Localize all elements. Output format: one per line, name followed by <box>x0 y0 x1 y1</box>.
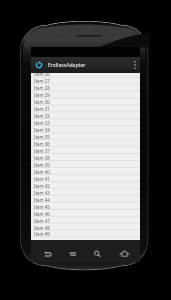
button[interactable]: Item 28 <box>31 84 140 91</box>
staticText: Item 39 <box>34 162 50 168</box>
staticText: Item 33 <box>34 120 50 126</box>
button[interactable]: Item 36 <box>31 140 140 147</box>
staticText: Item 48 <box>34 225 50 231</box>
button[interactable]: Item 39 <box>31 161 140 168</box>
button[interactable]: Item 46 <box>31 210 140 217</box>
staticText: Item 38 <box>34 155 50 161</box>
button[interactable]: Item 30 <box>31 98 140 105</box>
staticText: Item 30 <box>34 99 50 105</box>
staticText: Item 44 <box>34 197 50 203</box>
button[interactable]: More options <box>129 57 140 73</box>
staticText: Item 42 <box>34 183 50 189</box>
button[interactable]: Item 48 <box>31 224 140 231</box>
button[interactable]: Item 45 <box>31 203 140 210</box>
button[interactable]: Item 34 <box>31 126 140 133</box>
staticText: Item 31 <box>34 106 50 112</box>
staticText: Item 47 <box>34 218 50 224</box>
button[interactable]: Item 38 <box>31 154 140 161</box>
staticText: Item 40 <box>34 169 50 175</box>
button[interactable]: Home <box>115 244 133 262</box>
staticText: Item 49 <box>34 231 50 237</box>
staticText: Item 41 <box>34 176 50 182</box>
staticText: Item 26 <box>34 71 50 77</box>
staticText: Item 27 <box>34 78 50 84</box>
button[interactable]: Item 43 <box>31 189 140 196</box>
staticText: Item 29 <box>34 92 50 98</box>
button[interactable]: Search <box>88 244 106 262</box>
button[interactable]: Item 31 <box>31 105 140 112</box>
button[interactable]: Item 26 <box>31 70 140 77</box>
button[interactable]: Item 37 <box>31 147 140 154</box>
button[interactable]: Menu <box>63 244 81 262</box>
button[interactable]: Item 47 <box>31 217 140 224</box>
staticText: Item 35 <box>34 134 50 140</box>
staticText: Item 37 <box>34 148 50 154</box>
button[interactable]: Item 35 <box>31 133 140 140</box>
button[interactable]: Back <box>38 244 56 262</box>
button[interactable]: Item 27 <box>31 77 140 84</box>
button[interactable]: Item 32 <box>31 112 140 119</box>
staticText: Item 46 <box>34 211 50 217</box>
staticText: Item 43 <box>34 190 50 196</box>
staticText: Item 28 <box>34 85 50 91</box>
staticText: Item 34 <box>34 127 50 133</box>
button[interactable]: EndlessAdapter <box>31 57 140 73</box>
button[interactable]: Item 44 <box>31 196 140 203</box>
button[interactable]: Item 33 <box>31 119 140 126</box>
staticText: Item 36 <box>34 141 50 147</box>
button[interactable]: Item 42 <box>31 182 140 189</box>
button[interactable]: Item 41 <box>31 175 140 182</box>
button[interactable]: Item 29 <box>31 91 140 98</box>
button[interactable]: Item 40 <box>31 168 140 175</box>
staticText: Item 32 <box>34 113 50 119</box>
button[interactable]: Item 49 <box>31 231 140 237</box>
staticText: Item 45 <box>34 204 50 210</box>
staticText: EndlessAdapter <box>48 62 86 69</box>
